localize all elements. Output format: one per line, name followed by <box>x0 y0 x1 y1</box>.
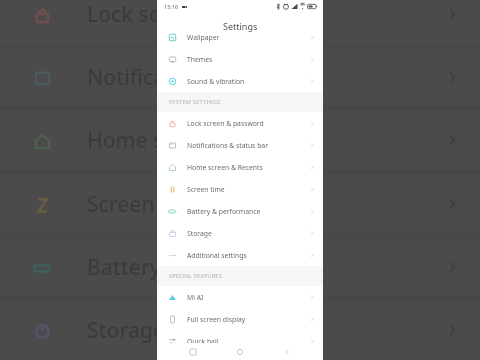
button[interactable]: Storage <box>157 222 323 244</box>
button[interactable]: Lock screen & password <box>157 112 323 134</box>
staticText: Quick ball <box>187 337 219 346</box>
staticText: Notifications & status bar <box>187 141 268 150</box>
button[interactable]: Themes <box>157 48 323 70</box>
button[interactable]: Notifications & status bar <box>157 134 323 156</box>
button[interactable]: Screen time <box>157 178 323 200</box>
button[interactable]: Battery & performance <box>157 200 323 222</box>
staticText: Screen time <box>87 190 206 219</box>
staticText: Lock screen & password <box>87 0 319 29</box>
button[interactable]: Mi AI <box>157 286 323 308</box>
staticText: SYSTEM SETTINGS <box>169 98 221 106</box>
button[interactable]: Home <box>229 343 251 360</box>
staticText: Full screen display <box>187 315 246 324</box>
staticText: Notifications & status bar <box>87 63 319 92</box>
button[interactable]: Wallpaper <box>157 26 323 48</box>
staticText: Home screen & Recents <box>187 163 263 172</box>
staticText: Additional settings <box>187 251 247 260</box>
staticText: Sound & vibration <box>187 77 245 86</box>
staticText: Home screen & Recents <box>87 126 319 155</box>
staticText: 15:16 <box>164 3 179 10</box>
staticText: Lock screen & password <box>187 119 264 128</box>
button[interactable]: Back <box>276 343 298 360</box>
button[interactable]: Sound & vibration <box>157 70 323 92</box>
staticText: Storage <box>87 316 165 345</box>
staticText: Storage <box>187 229 212 238</box>
button[interactable]: Recents <box>182 343 204 360</box>
button[interactable]: Additional settings <box>157 244 323 266</box>
staticText: Screen time <box>187 185 225 194</box>
button[interactable]: Home screen & Recents <box>157 156 323 178</box>
staticText: Settings <box>223 20 258 32</box>
staticText: Wallpaper <box>187 33 220 42</box>
button[interactable]: Quick ball <box>157 330 323 352</box>
button[interactable]: Full screen display <box>157 308 323 330</box>
staticText: Themes <box>187 55 213 64</box>
staticText: Mi AI <box>187 293 204 302</box>
staticText: Battery & performance <box>187 207 261 216</box>
staticText: SPECIAL FEATURES <box>169 272 223 280</box>
staticText: Battery & performance <box>87 253 318 282</box>
